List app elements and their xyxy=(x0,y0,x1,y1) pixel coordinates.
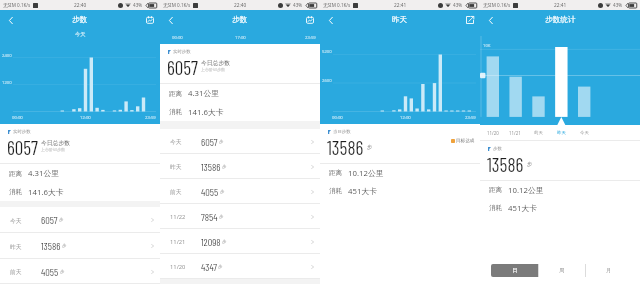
staticText: 451大卡 xyxy=(348,186,377,197)
button[interactable]: 11/20 xyxy=(160,254,320,279)
staticText: 11/21 xyxy=(170,238,196,246)
staticText: 步 xyxy=(60,269,65,275)
staticText: 13586 xyxy=(201,161,221,173)
staticText: 22:40 xyxy=(234,2,247,9)
staticText: 451大卡 xyxy=(508,203,537,214)
button[interactable]: Calendar xyxy=(139,10,160,30)
staticText: 上台阶记步数 xyxy=(41,147,65,152)
button[interactable]: Back xyxy=(160,10,181,30)
button[interactable]: 今天 xyxy=(160,129,320,154)
staticText: 4055 xyxy=(201,186,219,198)
staticText: 步 xyxy=(527,161,533,168)
staticText: 今天 xyxy=(75,31,86,38)
staticText: 今日总步数 xyxy=(201,59,230,66)
button[interactable]: 11/21 xyxy=(160,229,320,254)
staticText: 实时步数 xyxy=(13,129,31,135)
staticText: 6057 xyxy=(167,56,198,79)
staticText: 11/22 xyxy=(170,213,196,221)
staticText: 11/20 xyxy=(487,130,499,136)
button[interactable]: 11/22 xyxy=(160,204,320,229)
staticText: 17:00 xyxy=(235,35,246,41)
staticText: 141.6大卡 xyxy=(188,107,224,118)
staticText: 消耗 xyxy=(169,108,183,116)
staticText: 消耗 xyxy=(329,187,343,195)
button[interactable]: Share xyxy=(459,10,480,30)
staticText: 12098 xyxy=(201,236,221,248)
staticText: 22:40 xyxy=(74,2,87,9)
staticText: 43% xyxy=(293,2,303,8)
staticText: 步 xyxy=(222,239,227,245)
button[interactable]: 前天 xyxy=(0,259,160,284)
button[interactable]: 今天 xyxy=(573,125,595,140)
button[interactable]: 前天 xyxy=(527,125,549,140)
staticText: 13586 xyxy=(487,153,524,176)
staticText: 无SIM 0.1K/s xyxy=(483,2,511,8)
staticText: 22:41 xyxy=(394,2,407,9)
staticText: 昨天 xyxy=(392,15,408,25)
staticText: 前天 xyxy=(10,268,36,275)
staticText: 昨天 xyxy=(557,130,566,136)
staticText: 步 xyxy=(219,139,224,145)
staticText: 实时步数 xyxy=(173,49,191,55)
button[interactable]: 日 xyxy=(491,264,538,277)
staticText: 月 xyxy=(606,267,612,274)
staticText: 13586 xyxy=(327,136,364,159)
staticText: 13586 xyxy=(41,240,61,252)
staticText: 2600 xyxy=(322,78,332,84)
staticText: 43% xyxy=(613,2,623,8)
button[interactable]: 11/21 xyxy=(504,125,526,140)
staticText: 昨天 xyxy=(10,243,36,250)
button[interactable]: 昨天 xyxy=(550,125,572,140)
staticText: 10.12公里 xyxy=(508,185,544,196)
staticText: 周 xyxy=(559,267,565,274)
button[interactable]: Back xyxy=(320,10,341,30)
button[interactable]: 周 xyxy=(538,264,585,277)
staticText: 距离 xyxy=(329,169,343,177)
staticText: 12:00 xyxy=(80,115,91,121)
button[interactable]: 昨天 xyxy=(160,154,320,179)
staticText: 昨天 xyxy=(170,163,196,170)
staticText: 00:00 xyxy=(12,115,23,121)
staticText: 43% xyxy=(133,2,143,8)
staticText: 日 xyxy=(512,267,518,274)
staticText: 消耗 xyxy=(9,188,23,196)
button[interactable]: Calendar xyxy=(299,10,320,30)
staticText: 步数 xyxy=(493,146,502,152)
staticText: 无SIM 0.1K/s xyxy=(163,2,191,8)
staticText: 6057 xyxy=(7,136,38,159)
staticText: 23:59 xyxy=(145,115,156,121)
staticText: 00:00 xyxy=(172,35,183,41)
staticText: 4.31公里 xyxy=(188,88,220,99)
staticText: 步数 xyxy=(72,15,88,25)
staticText: 距离 xyxy=(9,170,23,178)
staticText: 今天 xyxy=(10,217,36,224)
staticText: 4055 xyxy=(41,266,59,278)
staticText: 141.6大卡 xyxy=(28,187,64,198)
staticText: 12:00 xyxy=(400,115,411,121)
staticText: 消耗 xyxy=(489,204,503,212)
staticText: 当日步数 xyxy=(333,129,351,135)
staticText: 6057 xyxy=(41,214,58,226)
button[interactable]: Back xyxy=(480,10,501,30)
button[interactable]: Back xyxy=(0,10,21,30)
button[interactable]: 前天 xyxy=(160,179,320,204)
staticText: 步 xyxy=(219,214,224,220)
staticText: 6057 xyxy=(201,136,218,148)
staticText: 距离 xyxy=(169,90,183,98)
staticText: 23:59 xyxy=(465,115,476,121)
button[interactable]: 昨天 xyxy=(0,233,160,259)
staticText: 无SIM 0.1K/s xyxy=(3,2,31,8)
button[interactable]: 今天 xyxy=(0,207,160,233)
staticText: 步 xyxy=(222,164,227,170)
staticText: 步 xyxy=(220,189,225,195)
staticText: 前天 xyxy=(534,130,543,136)
staticText: 今日总步数 xyxy=(41,139,70,146)
staticText: 今天 xyxy=(580,130,589,136)
staticText: 10K xyxy=(483,43,491,49)
staticText: 距离 xyxy=(489,186,503,194)
staticText: 23:59 xyxy=(305,35,316,41)
staticText: 4.31公里 xyxy=(28,168,60,179)
button[interactable]: 月 xyxy=(585,264,632,277)
staticText: 7854 xyxy=(201,211,218,223)
button[interactable]: 11/20 xyxy=(482,125,504,140)
